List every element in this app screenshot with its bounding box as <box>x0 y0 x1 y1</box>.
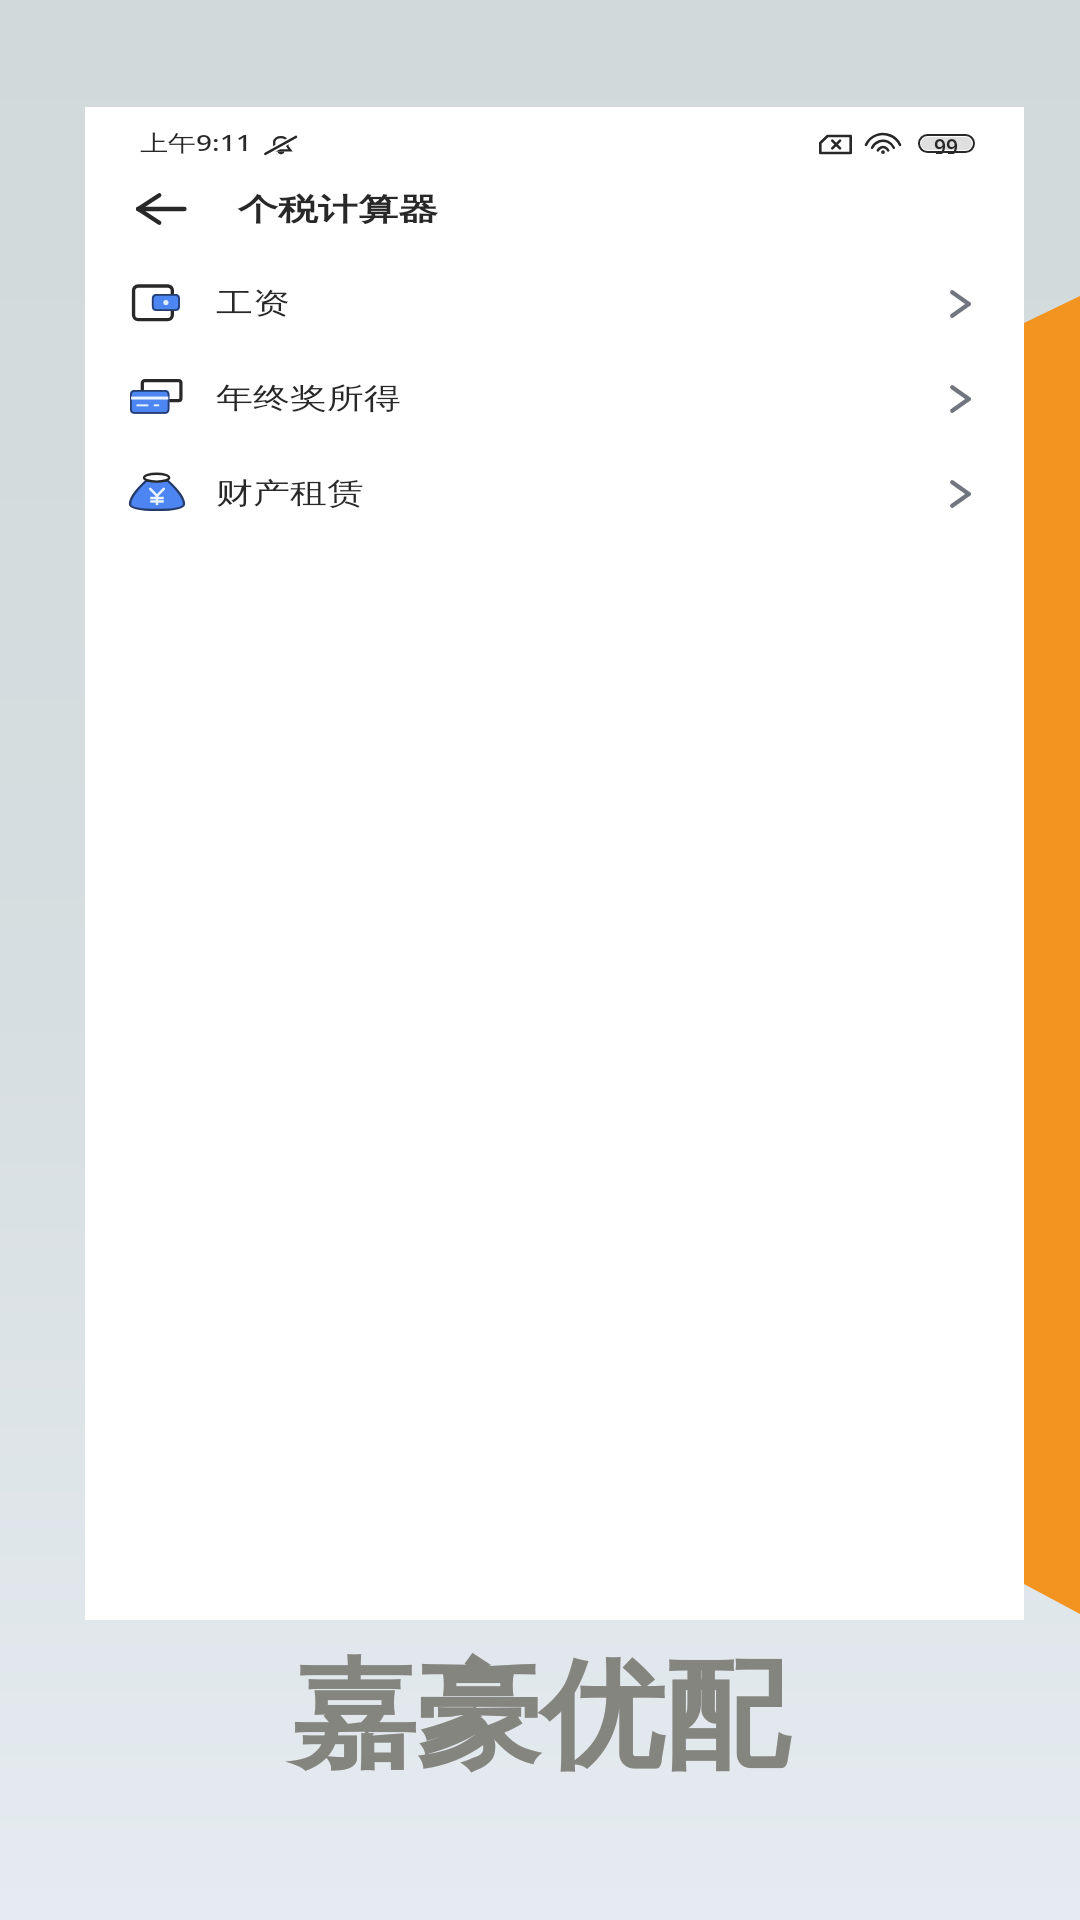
staticText: 个税计算器 <box>238 190 438 228</box>
button[interactable]: 年终奖所得 <box>85 351 1024 446</box>
button[interactable]: Back <box>123 181 199 237</box>
staticText: 嘉豪优配 <box>292 1643 788 1791</box>
staticText: 年终奖所得 <box>216 380 401 417</box>
button[interactable]: 工资 <box>85 256 1024 351</box>
staticText: 工资 <box>216 285 290 322</box>
button[interactable]: 财产租赁 <box>85 446 1024 541</box>
staticText: 99 <box>934 133 959 154</box>
staticText: 上午9:11 <box>140 127 252 157</box>
staticText: 财产租赁 <box>216 475 364 512</box>
